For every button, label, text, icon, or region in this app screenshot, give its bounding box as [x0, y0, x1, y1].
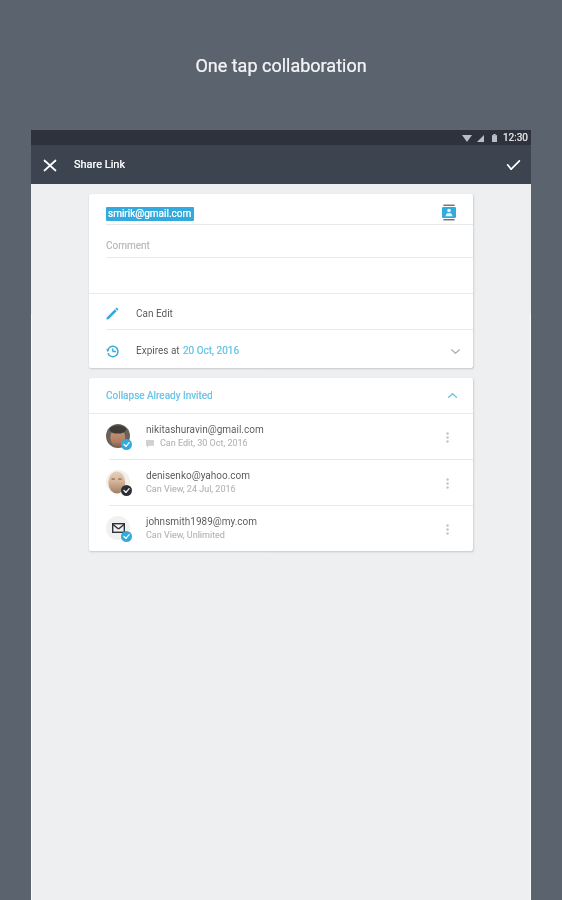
- staticText: One tap collaboration: [195, 55, 367, 76]
- staticText: Can View, 24 Jul, 2016: [146, 484, 236, 495]
- staticText: Share Link: [74, 158, 126, 171]
- staticText: nikitashuravin@gmail.com: [146, 424, 264, 436]
- button[interactable]: Expires at: [89, 330, 473, 368]
- button[interactable]: More options: [437, 473, 457, 493]
- button[interactable]: Done: [496, 148, 530, 182]
- staticText: Comment: [106, 240, 150, 252]
- staticText: 20 Oct, 2016: [183, 345, 240, 357]
- button[interactable]: Choose contact: [438, 201, 460, 223]
- staticText: Collapse Already Invited: [106, 390, 213, 402]
- button[interactable]: Can Edit: [89, 294, 473, 329]
- button[interactable]: Close: [33, 148, 67, 182]
- button[interactable]: denisenko@yahoo.com: [89, 460, 473, 505]
- button[interactable]: Collapse Already Invited: [89, 378, 473, 413]
- staticText: Can Edit: [136, 308, 173, 320]
- button[interactable]: nikitashuravin@gmail.com: [89, 414, 473, 459]
- staticText: 12:30: [503, 132, 528, 144]
- staticText: smirik@gmail.com: [108, 208, 192, 220]
- staticText: Can Edit, 30 Oct, 2016: [160, 438, 248, 449]
- staticText: johnsmith1989@my.com: [146, 516, 258, 528]
- staticText: Can View, Unlimited: [146, 530, 225, 541]
- button[interactable]: johnsmith1989@my.com: [89, 506, 473, 551]
- staticText: Expires at: [136, 345, 183, 357]
- button[interactable]: More options: [437, 427, 457, 447]
- staticText: denisenko@yahoo.com: [146, 470, 250, 482]
- button[interactable]: More options: [437, 519, 457, 539]
